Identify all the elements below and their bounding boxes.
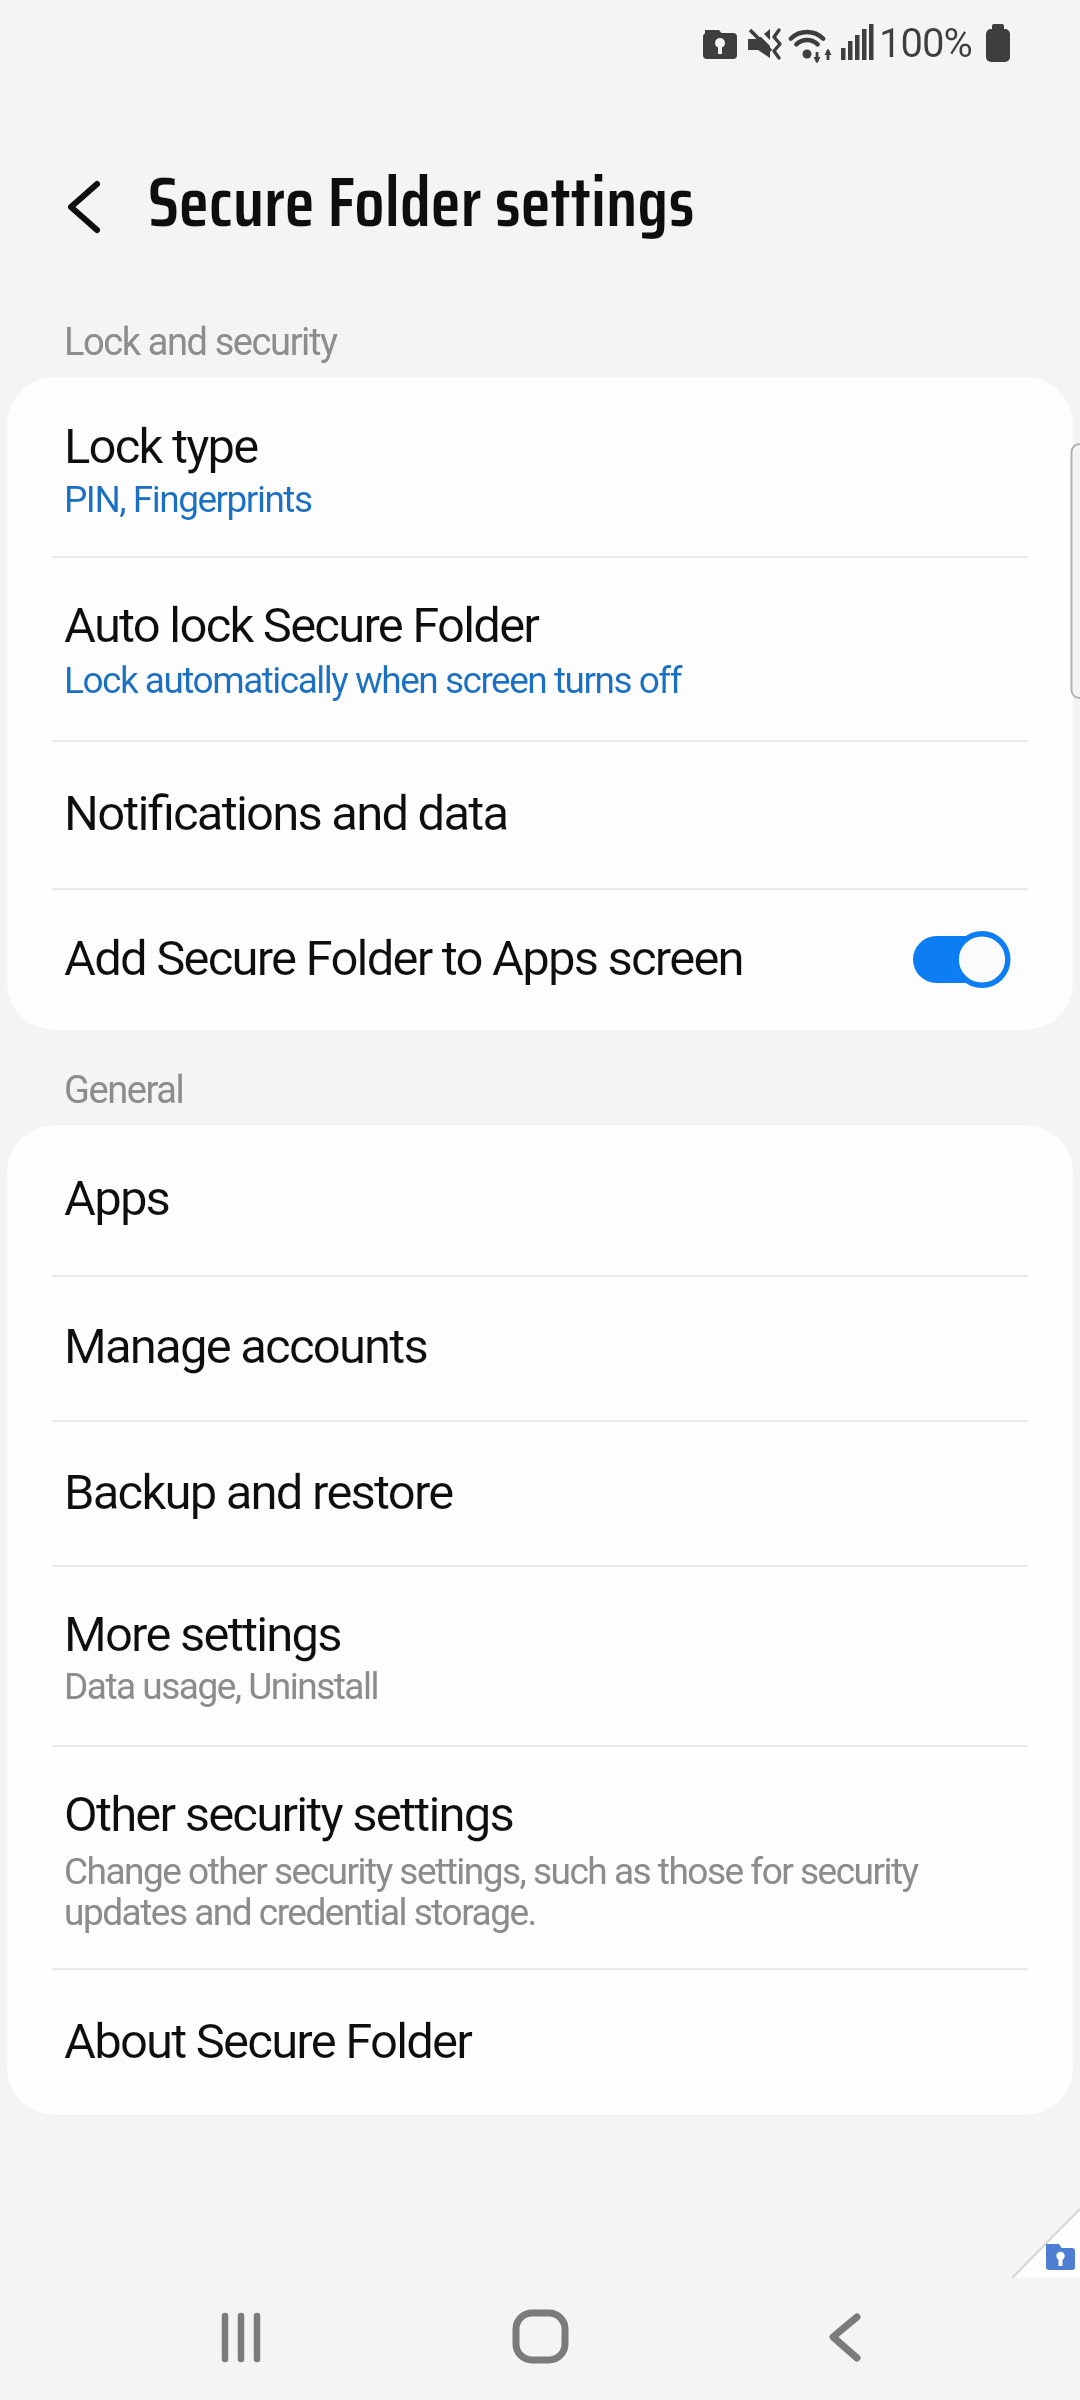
staticText: Other security settings — [64, 1786, 514, 1843]
staticText: General — [64, 1068, 184, 1113]
staticText: Change other security settings, such as … — [64, 1850, 918, 1893]
staticText: Notifications and data — [64, 785, 508, 842]
staticText: Auto lock Secure Folder — [64, 597, 539, 654]
staticText: Data usage, Uninstall — [64, 1665, 378, 1708]
staticText: Lock automatically when screen turns off — [64, 659, 682, 702]
staticText: Lock and security — [64, 320, 337, 365]
staticText: Secure Folder settings — [148, 147, 695, 257]
staticText: 100% — [879, 20, 972, 67]
staticText: About Secure Folder — [64, 2013, 472, 2070]
staticText: Backup and restore — [64, 1464, 453, 1521]
staticText: More settings — [64, 1606, 341, 1663]
staticText: PIN, Fingerprints — [64, 478, 312, 521]
staticText: updates and credential storage. — [64, 1891, 536, 1934]
staticText: Add Secure Folder to Apps screen — [64, 930, 743, 987]
staticText: Manage accounts — [64, 1318, 428, 1375]
staticText: Lock type — [64, 418, 258, 475]
staticText: Apps — [64, 1170, 170, 1227]
